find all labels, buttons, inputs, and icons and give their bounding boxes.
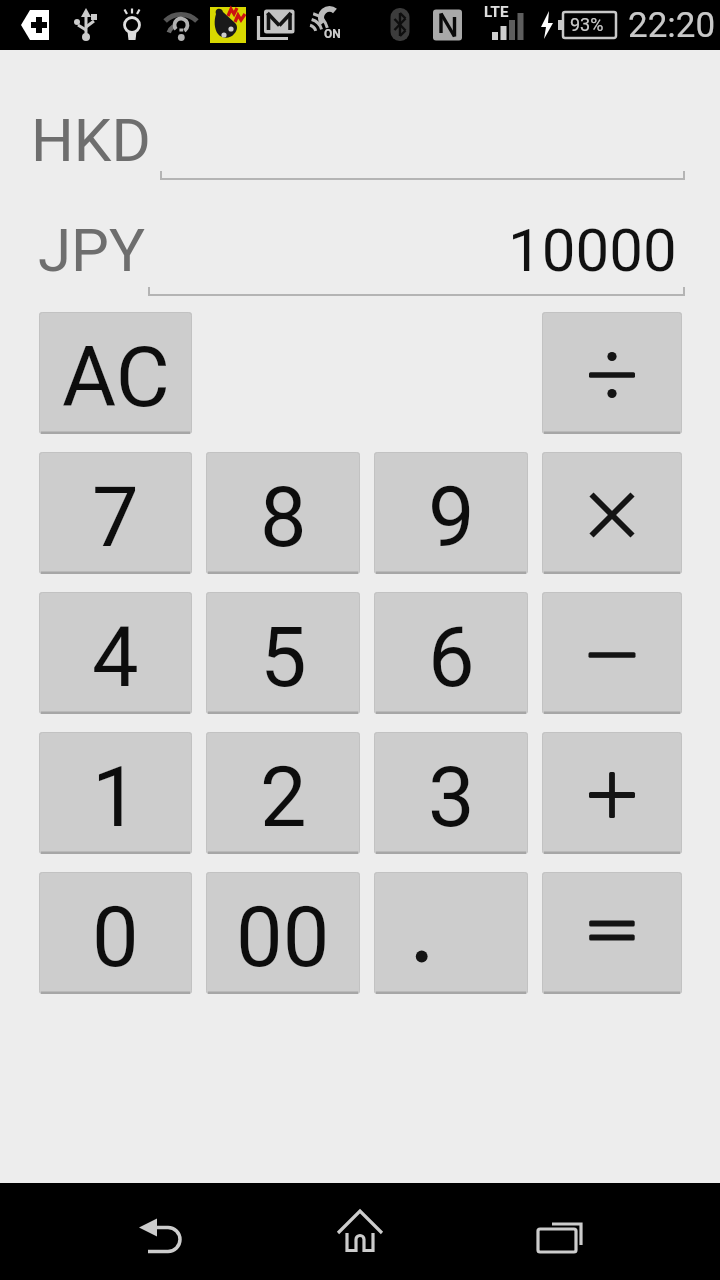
- staticText: 7: [92, 469, 139, 566]
- staticText: 6: [428, 609, 475, 706]
- staticText: 22:20: [628, 5, 716, 46]
- button[interactable]: [100, 1193, 220, 1270]
- button[interactable]: [542, 452, 682, 574]
- staticText: 4: [92, 609, 139, 706]
- button[interactable]: 0: [39, 872, 192, 994]
- button[interactable]: 5: [206, 592, 360, 714]
- button[interactable]: [542, 592, 682, 714]
- button[interactable]: [500, 1193, 620, 1270]
- button[interactable]: [542, 872, 682, 994]
- staticText: ON: [324, 27, 341, 41]
- staticText: 9: [428, 469, 475, 566]
- button[interactable]: 6: [374, 592, 528, 714]
- button[interactable]: 7: [39, 452, 192, 574]
- staticText: 00: [236, 889, 330, 986]
- staticText: LTE: [484, 3, 509, 21]
- staticText: 5: [260, 609, 307, 706]
- staticText: 3: [428, 749, 475, 846]
- staticText: 2: [260, 749, 307, 846]
- staticText: 1: [92, 749, 139, 846]
- button[interactable]: 1: [39, 732, 192, 854]
- button[interactable]: 4: [39, 592, 192, 714]
- button[interactable]: AC: [39, 312, 192, 434]
- staticText: 93%: [570, 14, 604, 35]
- button[interactable]: [300, 1193, 420, 1270]
- staticText: AC: [62, 329, 170, 426]
- staticText: 8: [260, 469, 307, 566]
- button[interactable]: 8: [206, 452, 360, 574]
- button[interactable]: 3: [374, 732, 528, 854]
- staticText: 0: [92, 889, 139, 986]
- button[interactable]: 9: [374, 452, 528, 574]
- staticText: JPY: [38, 215, 145, 285]
- button[interactable]: [374, 872, 528, 994]
- button[interactable]: 00: [206, 872, 360, 994]
- button[interactable]: 2: [206, 732, 360, 854]
- button[interactable]: [542, 732, 682, 854]
- staticText: 10000: [508, 215, 677, 285]
- staticText: HKD: [31, 105, 151, 175]
- button[interactable]: [542, 312, 682, 434]
